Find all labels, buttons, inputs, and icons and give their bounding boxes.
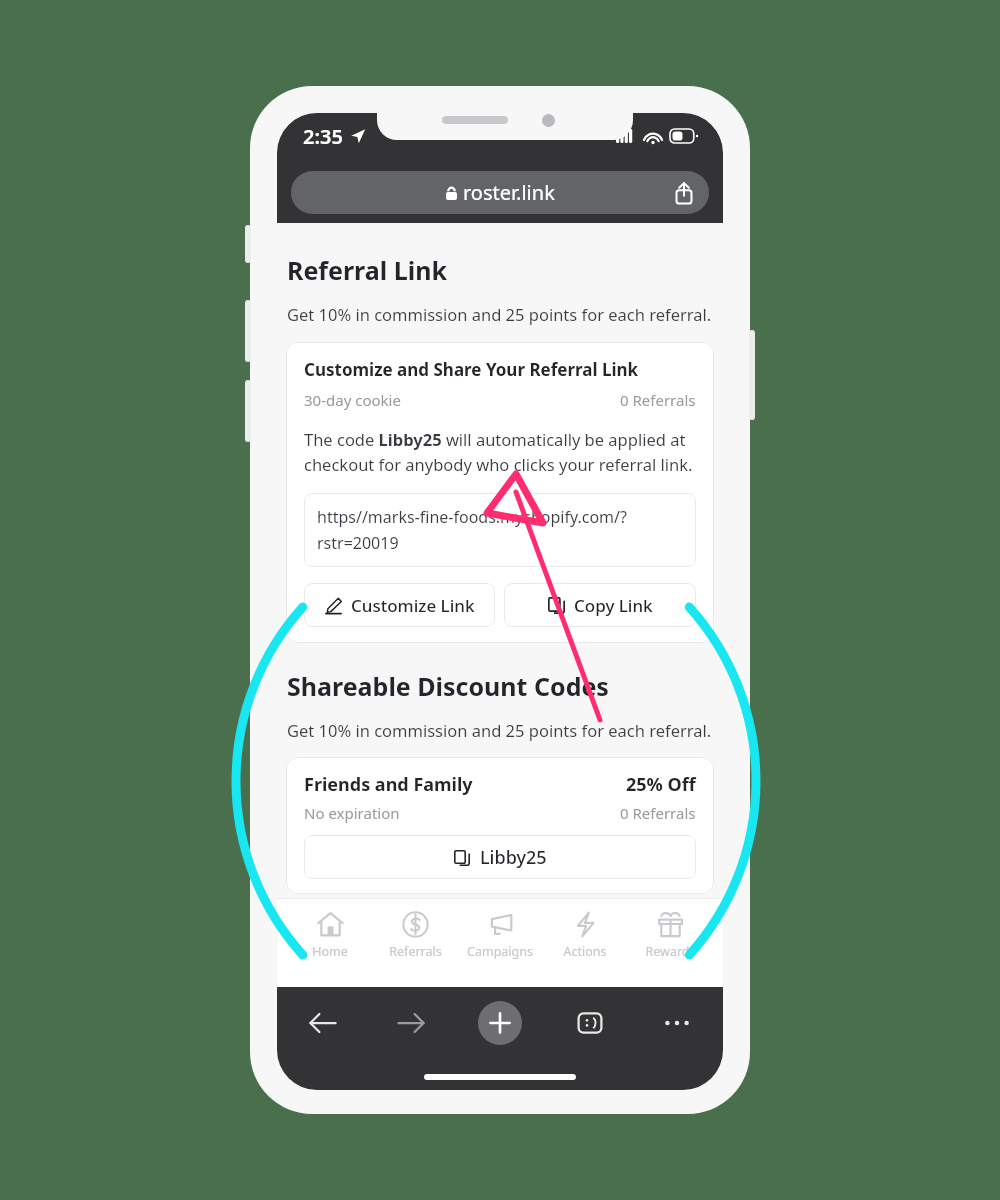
staticText: No expiration xyxy=(304,803,400,823)
staticText: 0 Referrals xyxy=(620,390,696,410)
staticText: Customize and Share Your Referral Link xyxy=(304,358,639,381)
staticText: Shareable Discount Codes xyxy=(287,669,609,703)
button[interactable]: Back xyxy=(303,1003,343,1043)
button[interactable]: Referrals xyxy=(375,899,455,987)
staticText: Home xyxy=(312,943,348,960)
staticText: Friends and Family xyxy=(304,772,473,797)
button[interactable]: New tab xyxy=(478,1001,522,1045)
staticText: 30-day cookie xyxy=(304,390,401,410)
staticText: Rewards xyxy=(645,943,696,960)
staticText: Customize Link xyxy=(351,594,475,617)
staticText: Referrals xyxy=(389,943,442,960)
button[interactable]: Libby25 xyxy=(304,835,696,879)
button[interactable]: Actions xyxy=(545,899,625,987)
staticText: roster.link xyxy=(463,179,555,206)
staticText: Get 10% in commission and 25 points for … xyxy=(287,303,712,325)
button[interactable]: Copy Link xyxy=(504,583,696,627)
staticText: Campaigns xyxy=(467,943,533,960)
button[interactable]: Tabs xyxy=(570,1003,610,1043)
staticText: Referral Link xyxy=(287,253,447,287)
staticText: 0 Referrals xyxy=(620,803,696,823)
button[interactable]: Rewards xyxy=(630,899,710,987)
button[interactable]: Campaigns xyxy=(460,899,540,987)
button[interactable]: Forward xyxy=(391,1003,431,1043)
staticText: Get 10% in commission and 25 points for … xyxy=(287,719,712,741)
staticText: 25% Off xyxy=(626,772,696,797)
staticText: The code Libby25 will automatically be a… xyxy=(304,428,696,475)
button[interactable]: Home xyxy=(290,899,370,987)
button[interactable]: Share xyxy=(673,182,695,204)
staticText: Libby25 xyxy=(480,845,547,870)
button[interactable]: More xyxy=(657,1003,697,1043)
button[interactable]: Customize Link xyxy=(304,583,495,627)
staticText: https//marks-fine-foods.myshopify.com/?r… xyxy=(317,506,683,554)
staticText: Copy Link xyxy=(574,594,653,617)
button[interactable]: roster.link xyxy=(291,171,709,214)
staticText: Actions xyxy=(563,943,607,960)
staticText: 2:35 xyxy=(303,123,343,150)
button[interactable]: https//marks-fine-foods.myshopify.com/?r… xyxy=(304,493,696,567)
